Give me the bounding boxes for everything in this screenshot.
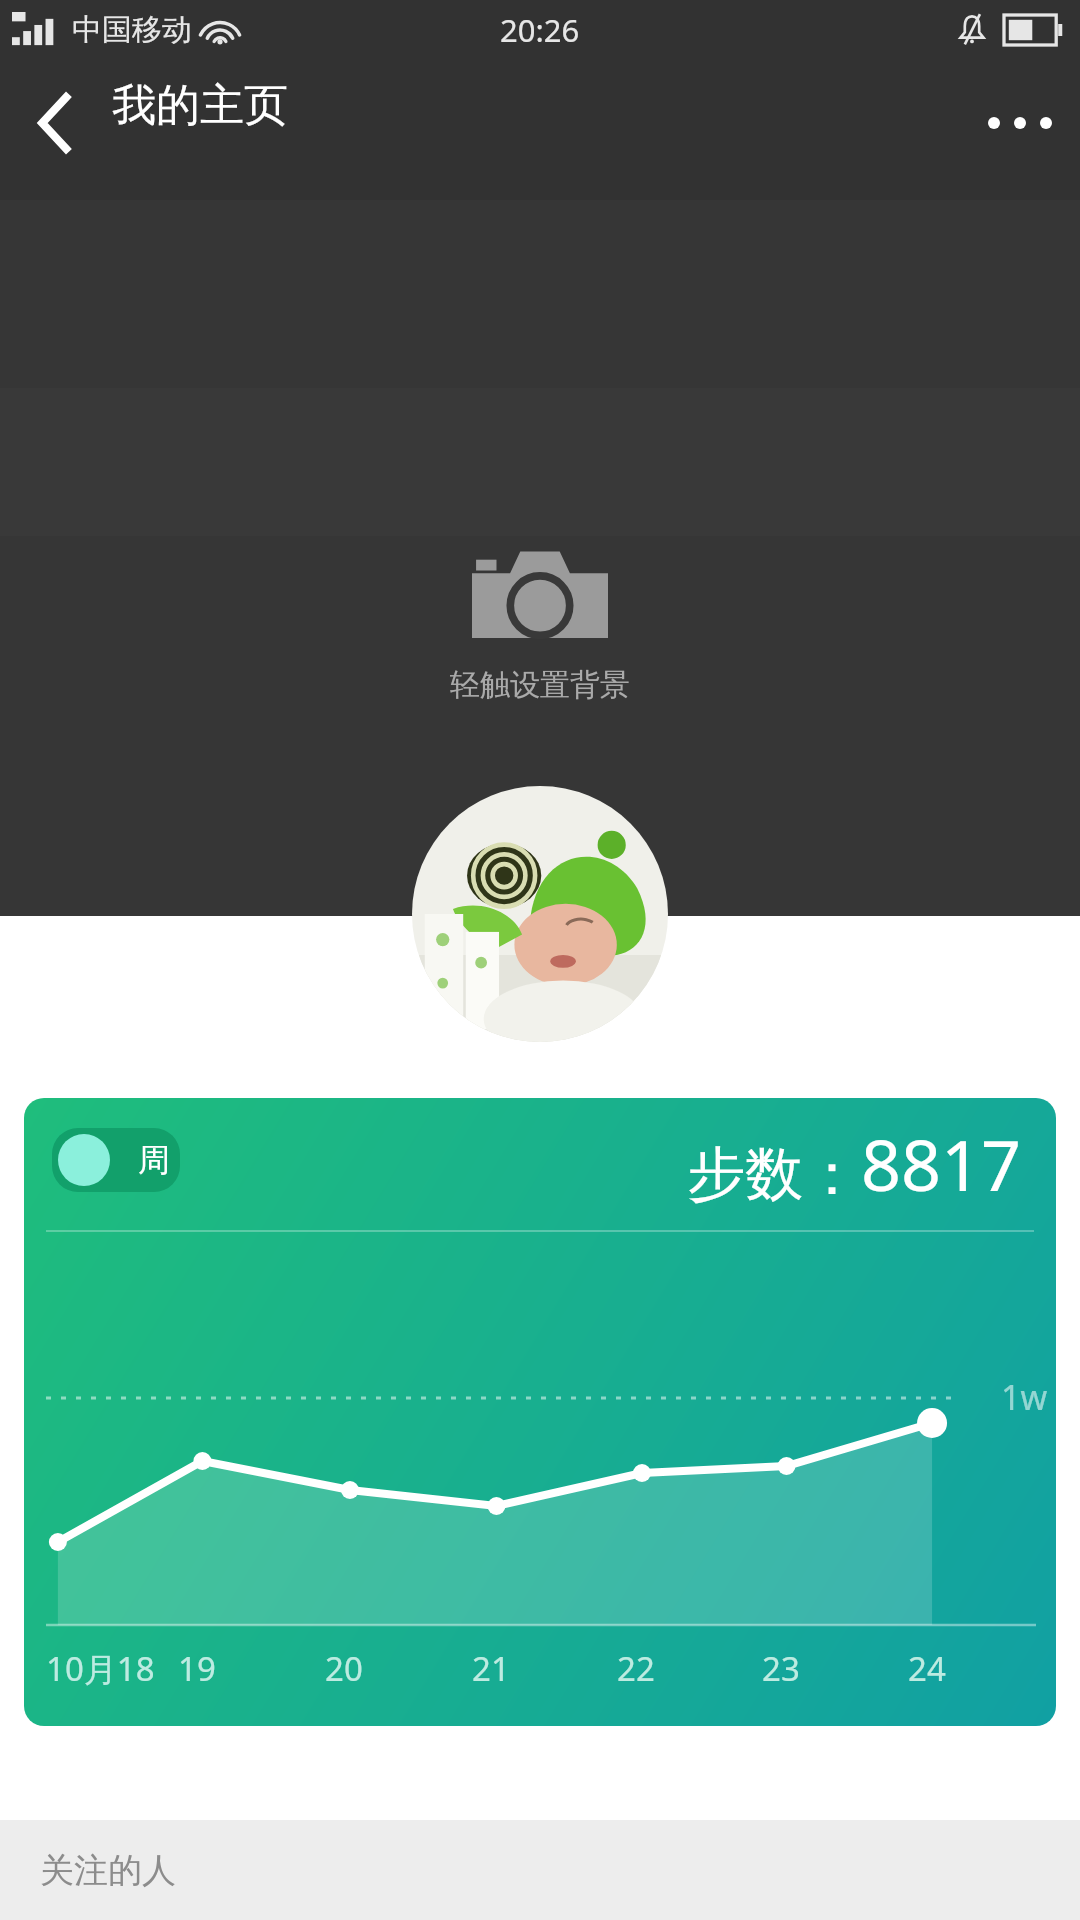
staticText: 周 xyxy=(138,1140,170,1180)
staticText: 我的主页 xyxy=(112,78,288,133)
staticText: 8817 xyxy=(861,1116,1022,1211)
staticText: 23 xyxy=(762,1646,800,1691)
staticText: 关注的人 xyxy=(40,1849,176,1892)
button[interactable]: 更多 xyxy=(960,68,1080,178)
button[interactable]: 轻触设置背景 xyxy=(450,548,630,704)
staticText: 1w xyxy=(1001,1374,1048,1420)
button[interactable]: 周 xyxy=(52,1128,180,1192)
button[interactable]: 关注的人 xyxy=(0,1820,1080,1920)
staticText: 步数： xyxy=(687,1138,861,1211)
staticText: 22 xyxy=(617,1646,655,1691)
button[interactable]: 返回 xyxy=(0,68,110,178)
button[interactable]: 头像 xyxy=(412,786,668,1042)
staticText: 20 xyxy=(325,1646,363,1691)
staticText: 10月18 xyxy=(46,1646,155,1691)
button[interactable]: 周 xyxy=(24,1098,1056,1726)
staticText: 20:26 xyxy=(500,9,580,51)
staticText: 24 xyxy=(908,1646,946,1691)
staticText: 中国移动 xyxy=(72,11,192,49)
staticText: 21 xyxy=(472,1646,510,1691)
staticText: 轻触设置背景 xyxy=(450,666,630,704)
staticText: 19 xyxy=(178,1646,216,1691)
